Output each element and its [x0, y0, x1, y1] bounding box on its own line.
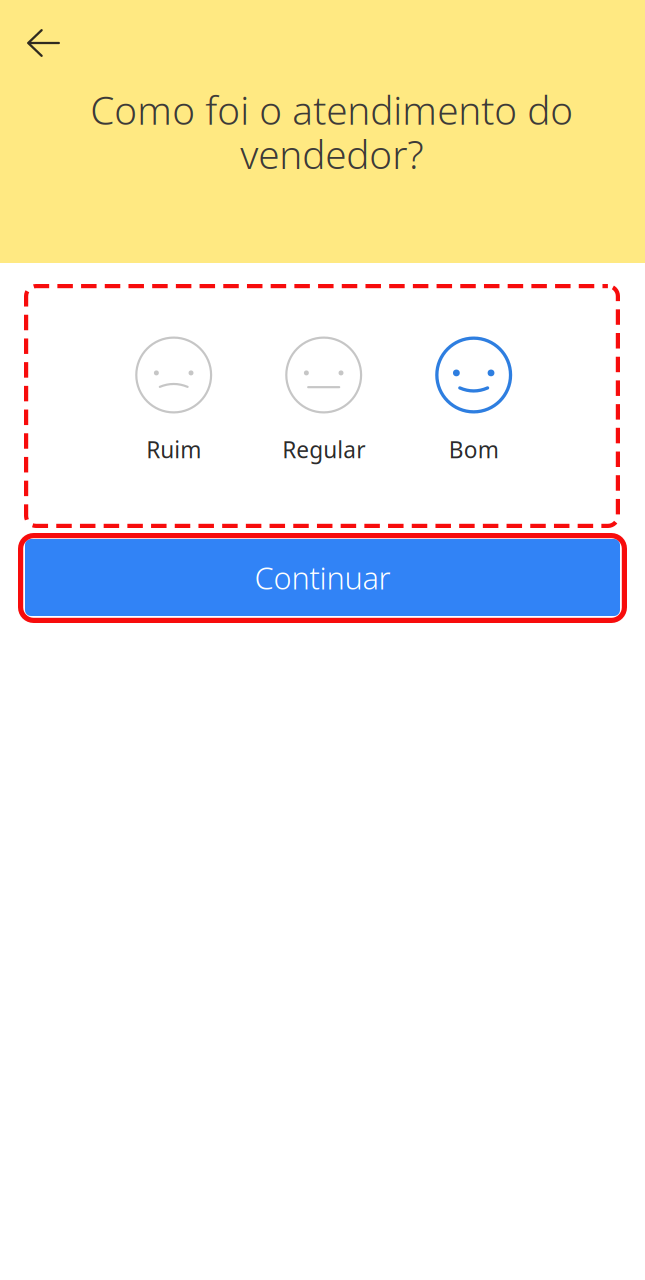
button[interactable]: Back	[0, 0, 76, 73]
staticText: Ruim	[146, 434, 201, 465]
button[interactable]: Ruim	[99, 336, 249, 464]
staticText: Como foi o atendimento do vendedor?	[90, 84, 573, 180]
button[interactable]: Regular	[249, 336, 399, 464]
staticText: Bom	[449, 434, 499, 465]
staticText: Regular	[282, 434, 365, 465]
button[interactable]: Bom	[399, 336, 549, 464]
button[interactable]: Continuar	[25, 539, 620, 616]
staticText: Continuar	[254, 557, 390, 598]
